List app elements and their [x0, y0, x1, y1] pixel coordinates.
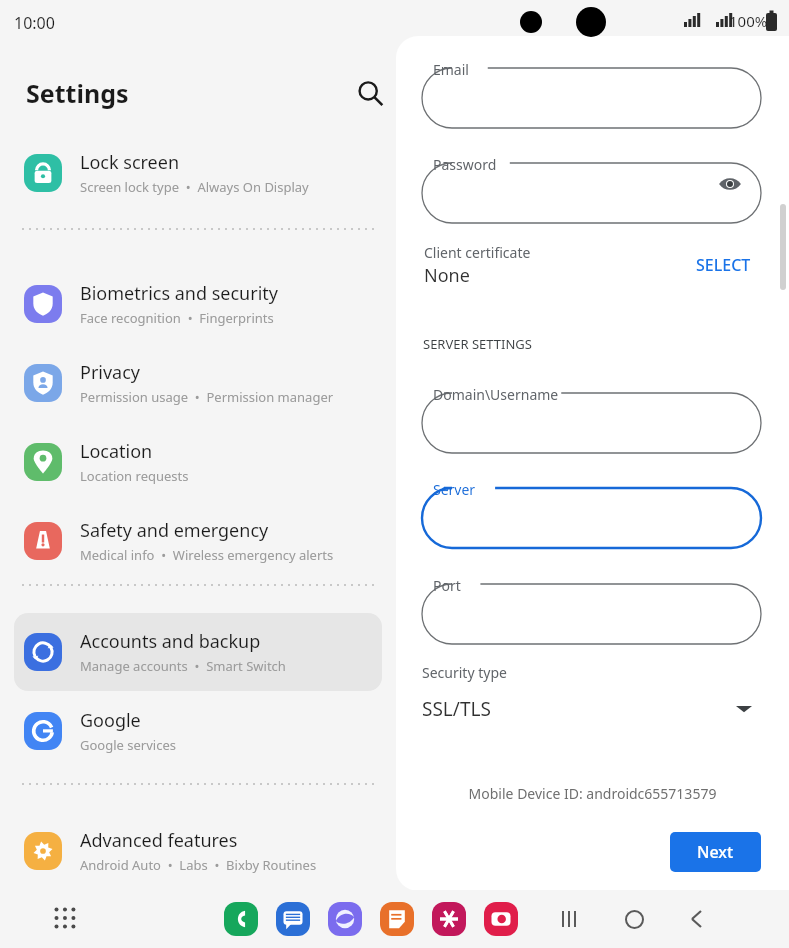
staticText: Location	[80, 439, 153, 464]
button[interactable]: recents	[552, 901, 588, 937]
staticText: Screen lock type • Always On Display	[80, 178, 309, 196]
staticText: Settings	[26, 76, 344, 110]
button[interactable]: Next	[670, 832, 761, 872]
button[interactable]: Accounts and backup	[14, 613, 382, 691]
button[interactable]: Privacy	[14, 344, 382, 422]
button[interactable]: Advanced features	[14, 812, 382, 890]
staticText: Location requests	[80, 467, 189, 485]
staticText: Android Auto • Labs • Bixby Routines	[80, 856, 317, 874]
staticText: Lock screen	[80, 150, 180, 175]
staticText: Mobile Device ID: androidc655713579	[396, 784, 789, 803]
button[interactable]: SSL/TLS	[414, 686, 766, 732]
staticText: Security type	[422, 663, 507, 682]
staticText: SSL/TLS	[422, 696, 491, 722]
button[interactable]: Camera	[484, 902, 518, 936]
button[interactable]: Messages	[276, 902, 310, 936]
staticText: Advanced features	[80, 828, 238, 853]
button[interactable]: Show password	[710, 164, 750, 204]
staticText: Email	[433, 60, 469, 79]
staticText: SELECT	[696, 254, 751, 276]
staticText: Manage accounts • Smart Switch	[80, 657, 286, 675]
staticText: Password	[433, 155, 497, 174]
button[interactable]: SELECT	[686, 246, 761, 284]
button[interactable]: Google	[14, 692, 382, 770]
staticText: Next	[697, 841, 734, 863]
button[interactable]: Home	[616, 901, 652, 937]
staticText: Safety and emergency	[80, 518, 269, 543]
staticText: Biometrics and security	[80, 281, 278, 306]
button[interactable]: Biometrics and security	[14, 265, 382, 343]
staticText: Server	[433, 480, 476, 499]
button[interactable]: Phone	[224, 902, 258, 936]
button[interactable]: Search	[344, 67, 396, 119]
button[interactable]: Location	[14, 423, 382, 501]
staticText: None	[424, 263, 470, 288]
staticText: Domain\Username	[433, 385, 559, 404]
staticText: Client certificate	[424, 243, 531, 262]
button[interactable]: Gallery	[432, 902, 466, 936]
button[interactable]: Notes	[380, 902, 414, 936]
button[interactable]: Apps	[46, 899, 86, 939]
button[interactable]: Lock screen	[14, 134, 382, 212]
staticText: Medical info • Wireless emergency alerts	[80, 546, 334, 564]
staticText: Google services	[80, 736, 176, 754]
staticText: Privacy	[80, 360, 141, 385]
staticText: 100%	[729, 11, 768, 31]
staticText: SERVER SETTINGS	[423, 335, 532, 353]
button[interactable]: Safety and emergency	[14, 502, 382, 580]
staticText: Google	[80, 708, 141, 733]
staticText: Face recognition • Fingerprints	[80, 309, 274, 327]
staticText: Accounts and backup	[80, 629, 261, 654]
button[interactable]: Back	[680, 901, 716, 937]
button[interactable]: Internet	[328, 902, 362, 936]
staticText: Permission usage • Permission manager	[80, 388, 334, 406]
staticText: Port	[433, 576, 461, 595]
staticText: 10:00	[14, 12, 55, 34]
